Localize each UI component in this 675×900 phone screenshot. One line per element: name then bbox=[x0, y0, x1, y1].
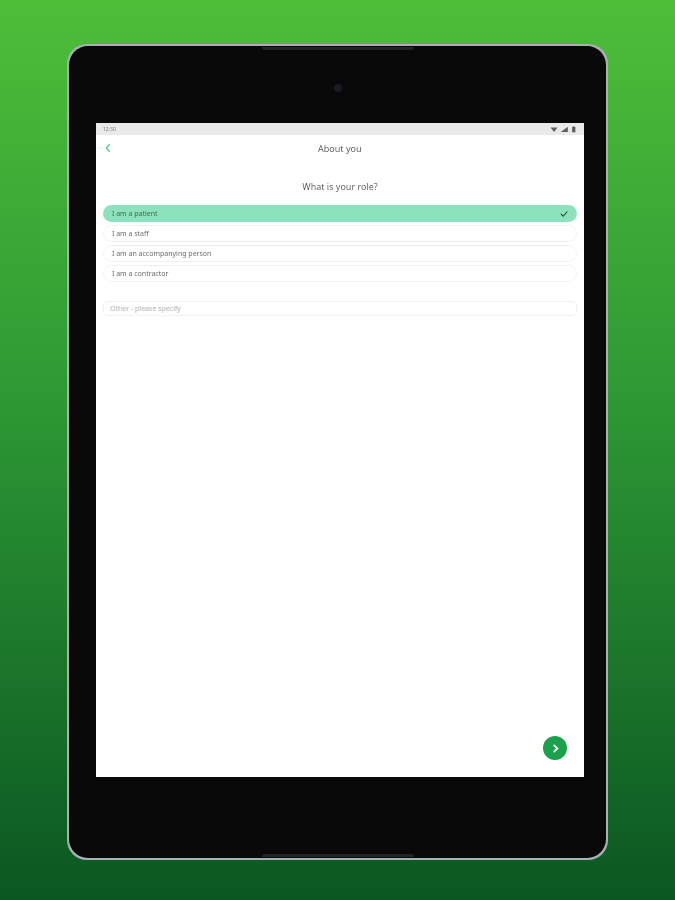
button[interactable]: Back bbox=[99, 139, 117, 157]
staticText: About you bbox=[318, 142, 362, 154]
button[interactable]: Next bbox=[543, 736, 567, 760]
button[interactable]: I am a patient bbox=[103, 205, 577, 222]
staticText: What is your role? bbox=[96, 180, 584, 192]
button[interactable]: Other - please specify bbox=[103, 301, 577, 316]
staticText: I am a contractor bbox=[112, 269, 169, 279]
staticText: Other - please specify bbox=[110, 304, 181, 314]
staticText: 12:30 bbox=[103, 126, 116, 133]
button[interactable]: I am an accompanying person bbox=[103, 245, 577, 262]
button[interactable]: I am a contractor bbox=[103, 265, 577, 282]
staticText: I am a patient bbox=[112, 209, 158, 219]
staticText: I am a staff bbox=[112, 229, 149, 239]
button[interactable]: I am a staff bbox=[103, 225, 577, 242]
staticText: I am an accompanying person bbox=[112, 249, 212, 259]
